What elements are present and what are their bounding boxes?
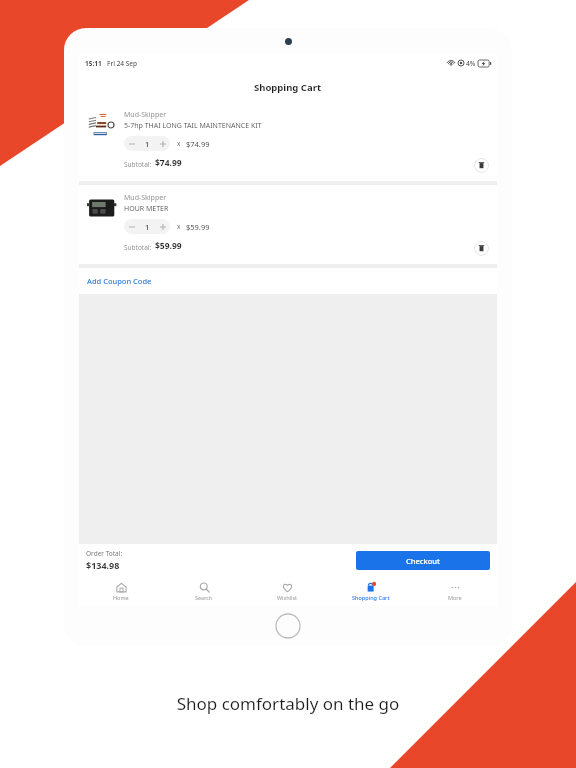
staticText: x [177,222,181,231]
button[interactable]: More [413,576,497,606]
staticText: Mud-Skipper [124,110,167,120]
button[interactable]: Increase quantity [155,136,170,151]
staticText: 4% [466,59,476,68]
button[interactable]: Wishlist [245,576,329,606]
button[interactable]: Shopping Cart [329,576,413,606]
staticText: 15:11 [85,59,102,68]
staticText: 1 [145,139,150,149]
staticText: Order Total: [86,549,123,558]
staticText: Search [195,594,213,601]
staticText: Subtotal: [124,243,152,252]
staticText: Subtotal: [124,160,152,169]
staticText: Fri 24 Sep [107,59,138,68]
staticText: $134.98 [86,559,120,571]
staticText: $59.99 [186,222,210,232]
button[interactable]: Decrease quantity [124,219,139,234]
button[interactable]: Mud-Skipper [79,102,497,181]
staticText: Shop comfortably on the go [0,692,576,715]
staticText: 5-7hp THAI LONG TAIL MAINTENANCE KIT [124,121,262,131]
button[interactable]: Mud-Skipper [79,185,497,264]
button[interactable]: Search [162,576,245,606]
button[interactable]: Checkout [356,551,490,570]
staticText: HOUR METER [124,204,169,214]
staticText: Shopping Cart [352,594,390,601]
staticText: More [448,594,462,601]
button[interactable]: Decrease quantity [124,136,139,151]
staticText: Shopping Cart [254,81,322,94]
button[interactable]: Remove item [474,158,489,173]
staticText: $74.99 [155,157,182,169]
staticText: Wishlist [277,594,298,601]
staticText: x [177,139,181,148]
staticText: 1 [145,222,150,232]
staticText: $59.99 [155,240,182,252]
staticText: Checkout [406,556,440,566]
button[interactable]: Increase quantity [155,219,170,234]
button[interactable]: Remove item [474,241,489,256]
staticText: Mud-Skipper [124,193,167,203]
button[interactable]: Home [79,576,162,606]
staticText: Home [113,594,129,601]
staticText: $74.99 [186,139,210,149]
staticText: Add Coupon Code [87,276,152,286]
button[interactable]: Add Coupon Code [79,268,497,294]
